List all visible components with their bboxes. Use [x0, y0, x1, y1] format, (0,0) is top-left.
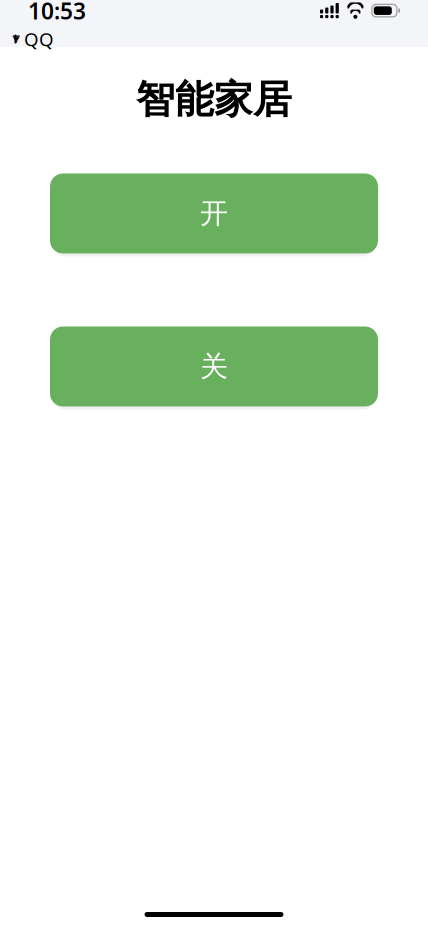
staticText: 10:53	[28, 0, 86, 26]
button[interactable]: 开	[46, 169, 382, 257]
staticText: 关	[200, 349, 228, 384]
staticText: QQ	[24, 27, 54, 51]
staticText: 开	[200, 196, 228, 231]
button[interactable]: Back to QQ	[7, 26, 58, 52]
button[interactable]: 关	[46, 322, 382, 410]
staticText: 智能家居	[136, 76, 292, 123]
